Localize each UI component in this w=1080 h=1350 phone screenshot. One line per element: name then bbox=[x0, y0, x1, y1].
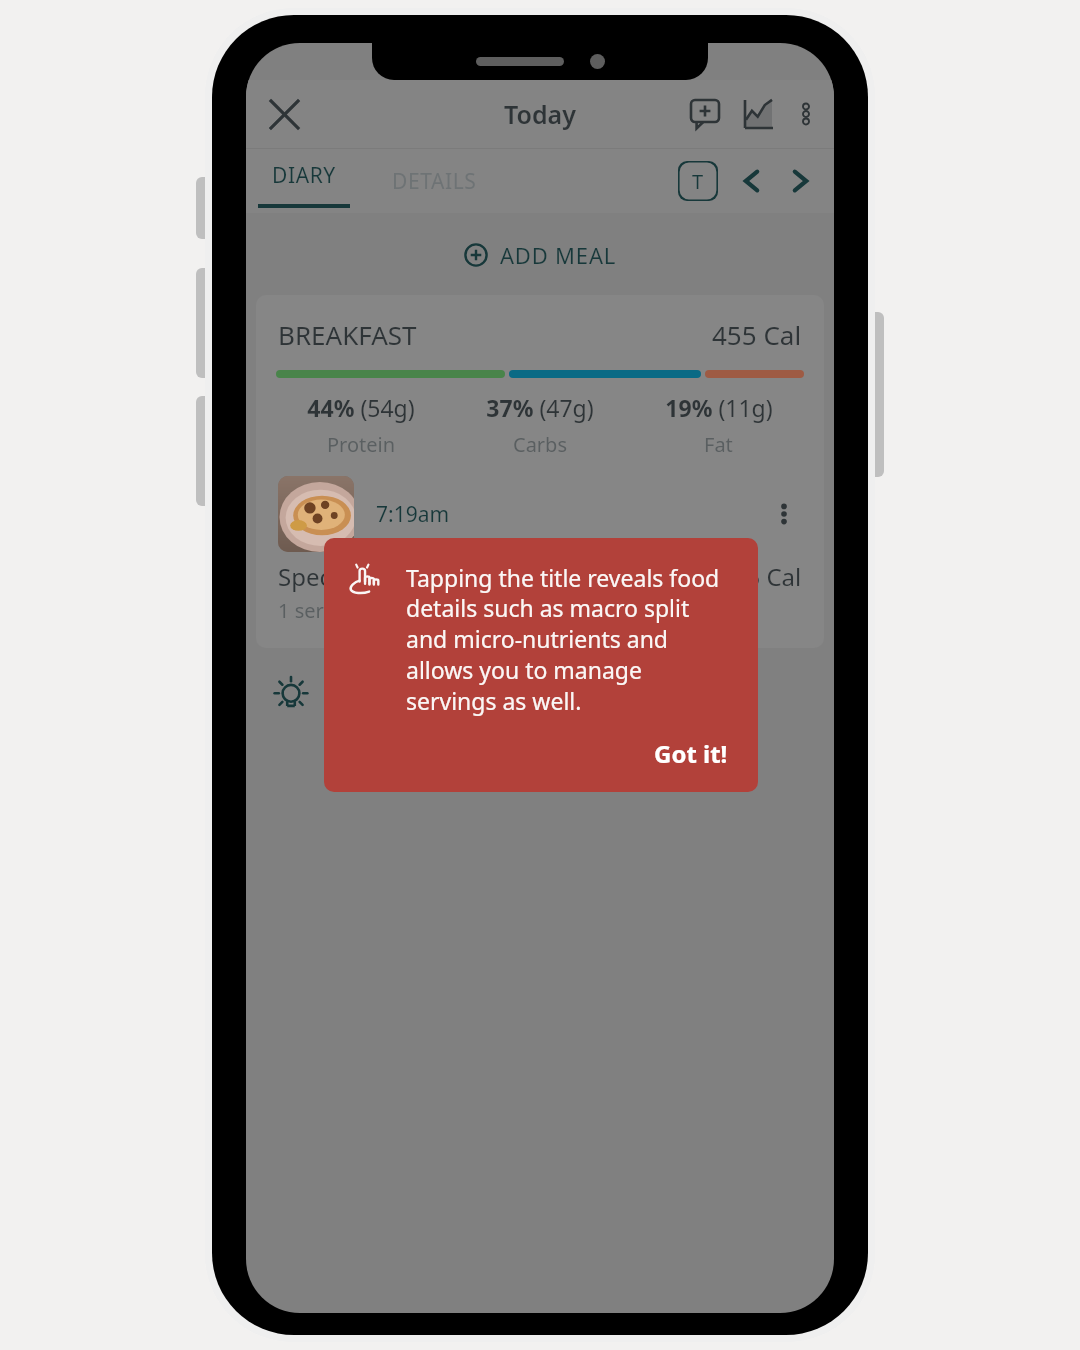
button[interactable]: DETAILS bbox=[380, 149, 489, 213]
button[interactable]: Next day bbox=[776, 157, 824, 205]
staticText: 455 Cal bbox=[712, 317, 802, 352]
staticText: DETAILS bbox=[392, 167, 477, 196]
staticText: 7:19am bbox=[376, 500, 450, 529]
button[interactable]: Previous day bbox=[728, 157, 776, 205]
staticText: 1 serving bbox=[278, 597, 364, 624]
staticText: Protein bbox=[327, 431, 396, 458]
staticText: DIARY bbox=[272, 161, 336, 190]
staticText: 19% (11g) bbox=[665, 392, 773, 423]
staticText: Goals and nutrition tips bbox=[326, 680, 580, 711]
button[interactable]: Goals and nutrition tips bbox=[246, 670, 834, 720]
staticText: ADD MEAL bbox=[500, 240, 617, 270]
staticText: T bbox=[692, 168, 704, 195]
staticText: 455 Cal bbox=[719, 560, 802, 593]
button[interactable]: Close bbox=[256, 86, 312, 142]
button[interactable]: BREAKFAST bbox=[256, 295, 824, 648]
button[interactable]: Jump to today bbox=[674, 157, 722, 205]
button[interactable]: Charts bbox=[732, 87, 786, 141]
button[interactable]: Add note bbox=[678, 87, 732, 141]
button[interactable]: DIARY bbox=[246, 149, 362, 213]
staticText: BREAKFAST bbox=[278, 317, 417, 352]
staticText: Carbs bbox=[513, 431, 567, 458]
staticText: 44% (54g) bbox=[307, 392, 415, 423]
button[interactable]: Tapping the title reveals food details s… bbox=[324, 538, 758, 792]
staticText: Today bbox=[504, 97, 576, 131]
button[interactable]: Got it! bbox=[648, 733, 734, 774]
staticText: 37% (47g) bbox=[486, 392, 594, 423]
button[interactable]: ADD MEAL bbox=[446, 232, 635, 278]
staticText: Fat bbox=[704, 431, 733, 458]
staticText: Got it! bbox=[654, 737, 728, 770]
button[interactable]: More options bbox=[786, 94, 826, 134]
staticText: Special Pancake bbox=[278, 560, 458, 593]
button[interactable]: Food options bbox=[762, 492, 806, 536]
staticText: Tapping the title reveals food details s… bbox=[406, 562, 734, 717]
